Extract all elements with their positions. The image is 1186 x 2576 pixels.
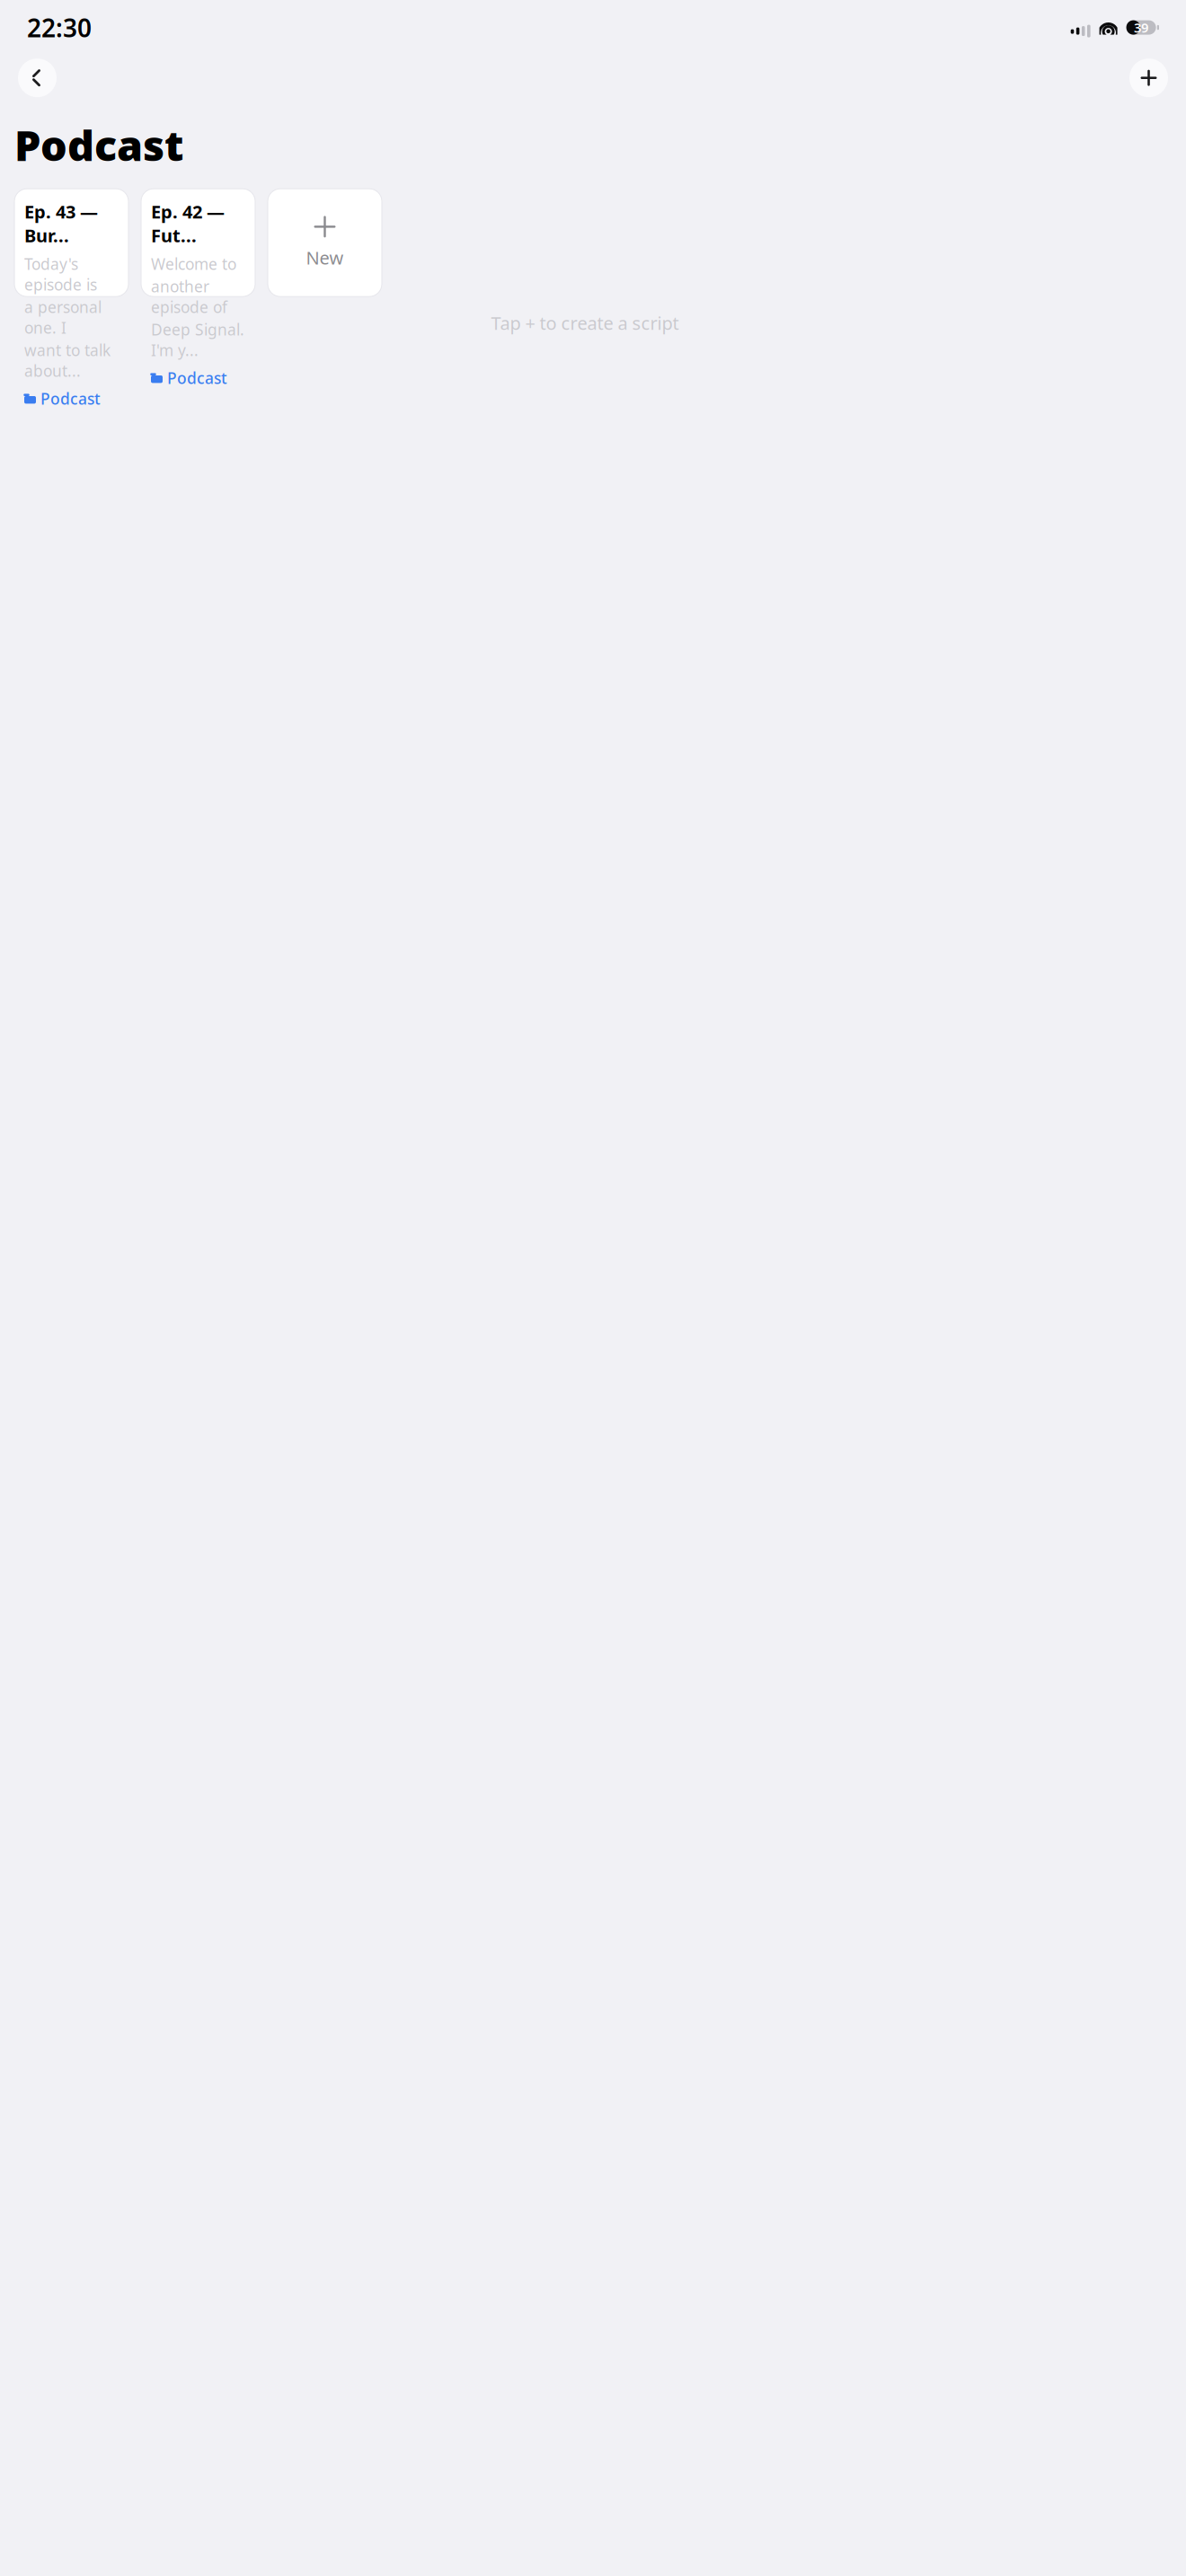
button[interactable]: Ep. 43 — Bur...	[14, 189, 128, 297]
staticText: Podcast	[14, 117, 183, 173]
staticText: Deep Signal. I'm y...	[151, 319, 244, 360]
staticText: another episode of	[151, 276, 227, 317]
button[interactable]: Back	[18, 59, 57, 97]
button[interactable]: New script	[268, 189, 382, 297]
staticText: want to talk about...	[24, 340, 111, 381]
staticText: Ep. 43 — Bur...	[24, 200, 98, 247]
staticText: Tap + to create a script	[491, 311, 679, 335]
staticText: Today's episode is	[24, 254, 97, 295]
staticText: 22:30	[27, 11, 92, 44]
staticText: Podcast	[40, 388, 101, 409]
button[interactable]: Add script	[1129, 59, 1168, 97]
staticText: a personal one. I	[24, 297, 102, 338]
staticText: New	[306, 246, 344, 269]
button[interactable]: Ep. 42 — Fut...	[141, 189, 255, 297]
staticText: Welcome to	[151, 254, 236, 274]
staticText: 39	[1134, 19, 1148, 36]
staticText: Ep. 42 — Fut...	[151, 200, 225, 247]
staticText: Podcast	[167, 368, 227, 388]
